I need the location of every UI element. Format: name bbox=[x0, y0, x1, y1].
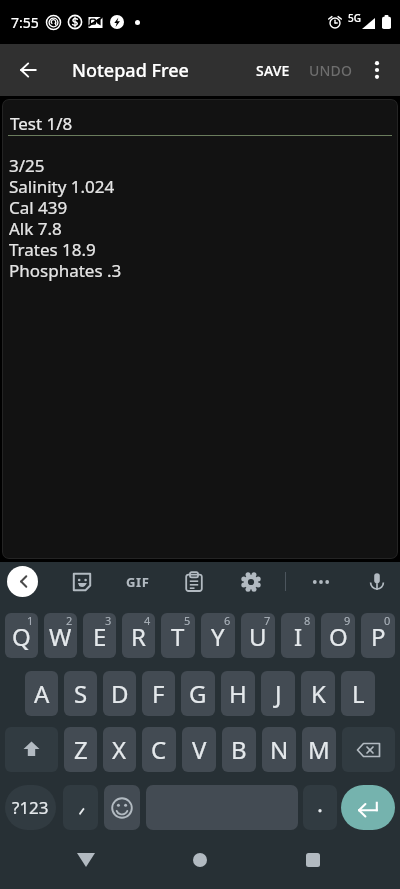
button[interactable]: Backspace bbox=[342, 727, 395, 772]
staticText: M bbox=[308, 733, 330, 766]
button[interactable]: Voice input bbox=[361, 566, 392, 597]
button[interactable]: GIF bbox=[122, 566, 153, 597]
staticText: 3/25 bbox=[9, 154, 45, 177]
button[interactable]: J bbox=[261, 671, 295, 716]
staticText: 7 bbox=[264, 613, 271, 628]
button[interactable]: Hide toolbar bbox=[7, 566, 38, 597]
staticText: Salinity 1.024 bbox=[9, 175, 115, 198]
button[interactable]: T bbox=[161, 613, 195, 658]
staticText: 9 bbox=[344, 613, 351, 628]
staticText: SAVE bbox=[256, 61, 290, 80]
staticText: Q bbox=[12, 620, 31, 653]
button[interactable]: Emoji bbox=[104, 785, 140, 830]
staticText: J bbox=[275, 677, 282, 710]
staticText: K bbox=[311, 677, 326, 710]
staticText: Phosphates .3 bbox=[9, 259, 122, 282]
staticText: Y bbox=[211, 620, 225, 653]
staticText: V bbox=[192, 733, 207, 766]
staticText: 8 bbox=[304, 613, 311, 628]
button[interactable]: Q bbox=[5, 613, 38, 658]
button[interactable]: UNDO bbox=[303, 44, 359, 96]
staticText: P bbox=[371, 620, 386, 653]
button[interactable]: E bbox=[83, 613, 116, 658]
staticText: F bbox=[152, 677, 165, 710]
staticText: Notepad Free bbox=[72, 58, 189, 83]
staticText: R bbox=[131, 620, 146, 653]
button[interactable]: D bbox=[103, 671, 136, 716]
button[interactable]: X bbox=[103, 727, 136, 772]
button[interactable]: Y bbox=[201, 613, 235, 658]
staticText: L bbox=[352, 677, 365, 710]
button[interactable]: L bbox=[341, 671, 375, 716]
button[interactable]: S bbox=[64, 671, 97, 716]
button[interactable]: Home bbox=[176, 831, 224, 889]
button[interactable]: M bbox=[302, 727, 336, 772]
staticText: C bbox=[151, 733, 167, 766]
button[interactable]: Test 1/8 bbox=[2, 99, 398, 559]
button[interactable]: P bbox=[361, 613, 395, 658]
staticText: 5G bbox=[348, 11, 361, 25]
staticText: Test 1/8 bbox=[10, 112, 73, 135]
staticText: U bbox=[249, 620, 267, 653]
staticText: X bbox=[112, 733, 127, 766]
staticText: 5 bbox=[184, 613, 191, 628]
staticText: S bbox=[74, 677, 88, 710]
button[interactable]: Enter bbox=[341, 785, 395, 830]
staticText: 2 bbox=[66, 613, 73, 628]
staticText: UNDO bbox=[309, 61, 353, 80]
button[interactable]: Back bbox=[62, 831, 110, 889]
button[interactable]: V bbox=[182, 727, 216, 772]
staticText: A bbox=[34, 677, 50, 710]
staticText: 6 bbox=[224, 613, 231, 628]
button[interactable]: C bbox=[142, 727, 176, 772]
button[interactable] bbox=[63, 785, 98, 830]
button[interactable]: ?123 bbox=[5, 785, 56, 830]
staticText: Cal 439 bbox=[9, 196, 68, 219]
staticText: 3 bbox=[105, 613, 112, 628]
button[interactable]: G bbox=[181, 671, 215, 716]
staticText: B bbox=[231, 733, 247, 766]
button[interactable]: Recents bbox=[289, 831, 337, 889]
staticText: Alk 7.8 bbox=[9, 217, 62, 240]
button[interactable]: W bbox=[44, 613, 77, 658]
button[interactable]: F bbox=[142, 671, 175, 716]
button[interactable]: More options bbox=[355, 48, 399, 92]
button[interactable]: More options bbox=[305, 566, 336, 597]
button[interactable]: Back bbox=[2, 44, 54, 96]
button[interactable]: K bbox=[301, 671, 335, 716]
button[interactable]: O bbox=[321, 613, 355, 658]
button[interactable]: A bbox=[25, 671, 58, 716]
button[interactable]: Settings bbox=[235, 566, 266, 597]
staticText: Trates 18.9 bbox=[9, 238, 96, 261]
staticText: GIF bbox=[126, 573, 150, 591]
button[interactable]: R bbox=[122, 613, 155, 658]
staticText: T bbox=[171, 620, 185, 653]
staticText: H bbox=[229, 677, 247, 710]
staticText: 1 bbox=[27, 613, 34, 628]
button[interactable]: Stickers bbox=[66, 566, 97, 597]
staticText: W bbox=[49, 620, 72, 653]
staticText: 4 bbox=[144, 613, 151, 628]
staticText: G bbox=[189, 677, 207, 710]
button[interactable] bbox=[303, 785, 337, 830]
button[interactable]: B bbox=[222, 727, 256, 772]
button[interactable]: U bbox=[241, 613, 275, 658]
button[interactable]: SAVE bbox=[245, 44, 301, 96]
staticText: O bbox=[329, 620, 348, 653]
staticText: Z bbox=[74, 733, 88, 766]
staticText: E bbox=[93, 620, 107, 653]
button[interactable]: Shift bbox=[5, 727, 58, 772]
button[interactable]: Clipboard bbox=[178, 566, 209, 597]
button[interactable]: I bbox=[281, 613, 315, 658]
button[interactable]: N bbox=[262, 727, 296, 772]
button[interactable]: Z bbox=[64, 727, 97, 772]
staticText: ?123 bbox=[12, 796, 49, 819]
staticText: 0 bbox=[384, 613, 391, 628]
staticText: N bbox=[270, 733, 289, 766]
staticText: 7:55 bbox=[11, 13, 39, 32]
staticText: D bbox=[111, 677, 129, 710]
staticText: I bbox=[294, 620, 303, 653]
button[interactable]: H bbox=[221, 671, 255, 716]
